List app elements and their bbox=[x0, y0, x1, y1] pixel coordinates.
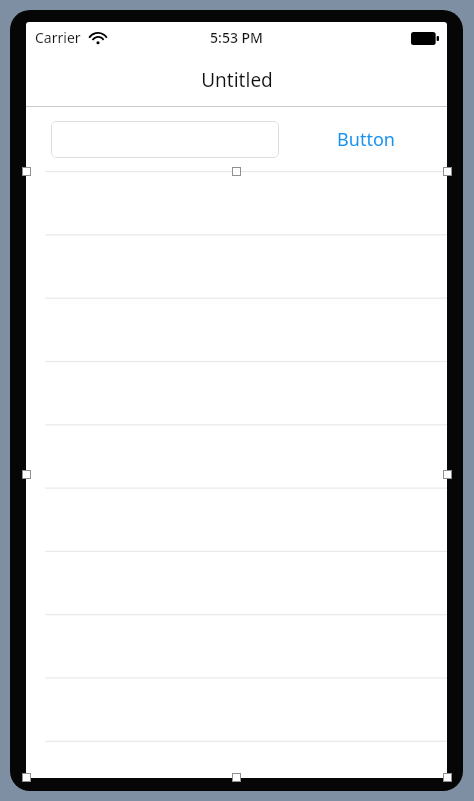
other: Battery full bbox=[411, 32, 439, 45]
button[interactable]: Text field bbox=[51, 121, 279, 158]
staticText: Untitled bbox=[201, 67, 273, 93]
other: Wi-Fi signal bbox=[90, 31, 106, 44]
staticText: 5:53 PM bbox=[210, 28, 263, 47]
staticText: Button bbox=[337, 127, 395, 152]
button[interactable] bbox=[26, 171, 447, 778]
staticText: Carrier bbox=[35, 28, 81, 47]
button[interactable]: Button bbox=[316, 117, 416, 161]
